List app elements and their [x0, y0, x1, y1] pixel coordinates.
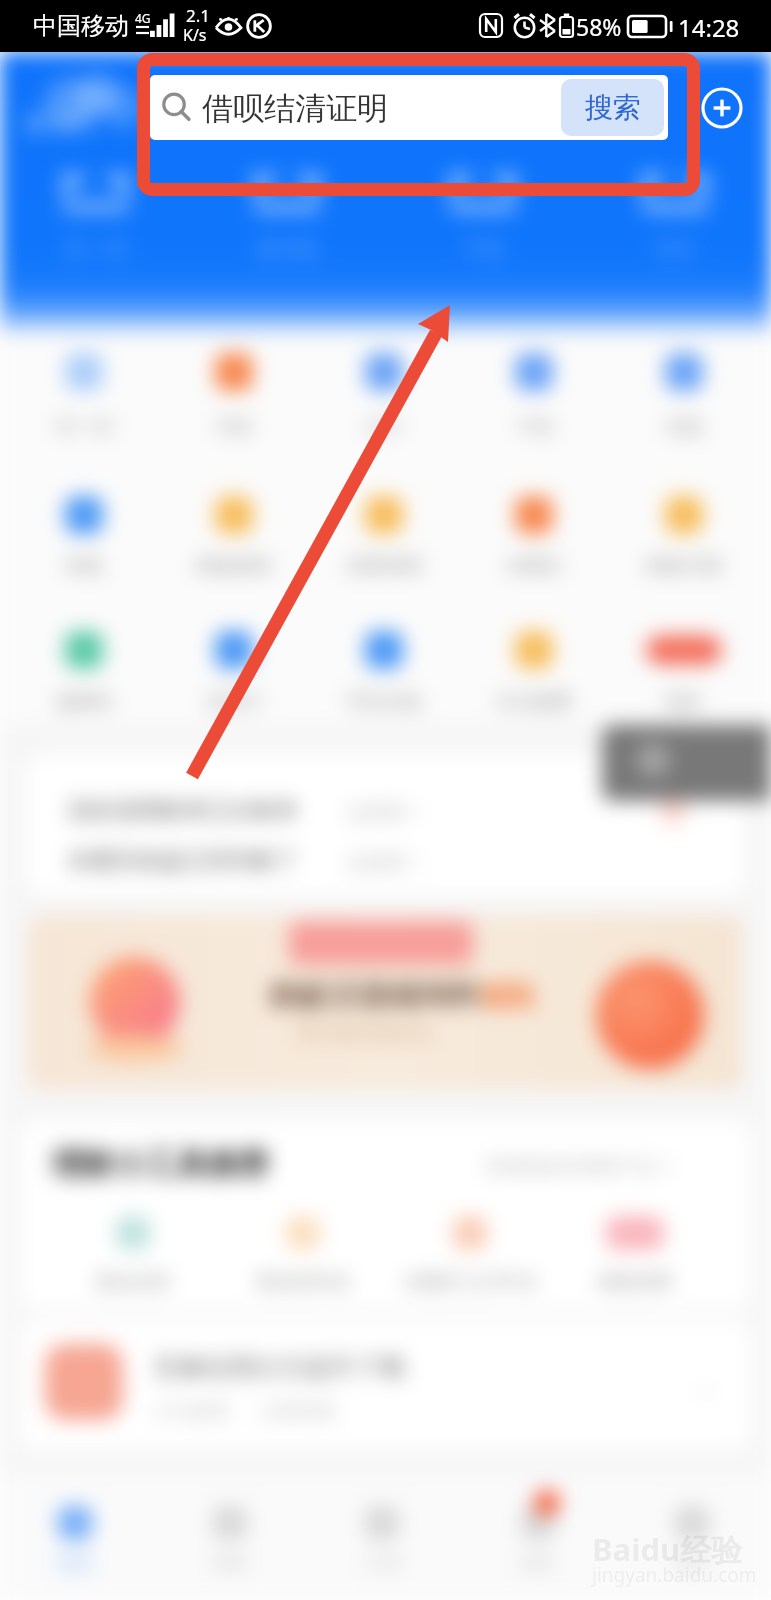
staticText: 今日推荐 立即查看 — [154, 1398, 336, 1424]
staticText: 蚂蚁森林 — [196, 554, 272, 578]
button[interactable]: 理财 — [192, 1475, 268, 1600]
staticText: jingyan.baidu.com — [592, 1562, 757, 1588]
staticText: 首页 — [57, 1552, 93, 1575]
staticText: 芝麻信用分又提升了哦 — [154, 1352, 404, 1383]
staticText: Baidu经验 — [592, 1528, 743, 1570]
staticText: K/s — [183, 24, 207, 46]
staticText: 领取 — [480, 979, 536, 1014]
staticText: 去查看 > — [346, 849, 419, 875]
staticText: 花呗借呗 — [346, 554, 422, 578]
staticText: 余额宝七日年化 — [404, 1270, 537, 1294]
staticText: 借呗结清证明 — [202, 89, 388, 128]
button[interactable]: 出行 — [629, 160, 721, 270]
staticText: 信用卡 — [206, 690, 263, 714]
staticText: 余额宝 — [506, 554, 563, 578]
staticText: 出行 — [365, 415, 403, 439]
button[interactable]: 搜索 — [561, 79, 664, 136]
staticText: 2.1 — [186, 4, 211, 27]
staticText: 中国移动 — [33, 11, 129, 41]
button[interactable]: 朋友 — [500, 1475, 576, 1600]
staticText: 晴 23°C — [26, 110, 96, 137]
button[interactable]: 首页 — [37, 1475, 113, 1600]
staticText: 14:28 — [678, 11, 740, 44]
staticText: 健康码 — [56, 690, 113, 714]
staticText: 去查看 > — [346, 799, 419, 825]
staticText: 58% — [576, 11, 622, 42]
staticText: 您的花呗账单已出账单 — [68, 796, 298, 825]
button[interactable]: 借呗结清证明 — [150, 75, 668, 140]
staticText: 保险保障 — [597, 1270, 673, 1294]
staticText: 理财小工具推荐 — [52, 1145, 269, 1184]
staticText: 更多 — [665, 690, 703, 714]
staticText: 蚂蚁庄园 — [646, 554, 722, 578]
staticText: 转账 — [65, 554, 103, 578]
button[interactable]: 口碑 — [344, 1475, 420, 1600]
button[interactable]: Add — [701, 87, 743, 129]
staticText: 搜索 — [585, 90, 641, 125]
staticText: 蚂蚁庄园领饲料 — [270, 977, 480, 1015]
staticText: 充值 — [665, 415, 703, 439]
staticText: 生活缴费 — [496, 690, 572, 714]
staticText: 4G — [135, 10, 151, 26]
button[interactable]: 我的 — [654, 1475, 730, 1600]
staticText: 我的 — [674, 1552, 710, 1575]
button[interactable]: 扫一扫 — [50, 160, 142, 270]
button[interactable]: 卡包 — [437, 160, 529, 270]
button[interactable]: 收付款 — [241, 160, 333, 270]
staticText: 余额宝收益已经到账了 — [68, 846, 298, 875]
